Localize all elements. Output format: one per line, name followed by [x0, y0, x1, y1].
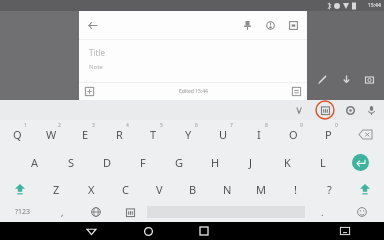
button[interactable]: , [45, 202, 79, 222]
button[interactable]: Back [86, 19, 99, 32]
staticText: ? [327, 182, 332, 197]
staticText: 8 [265, 122, 268, 129]
button[interactable]: More options [292, 87, 301, 96]
button[interactable]: B [176, 176, 210, 202]
staticText: B [189, 182, 197, 197]
staticText: H [211, 155, 220, 170]
button[interactable]: Voice input [365, 104, 378, 117]
button[interactable]: Colour [264, 19, 277, 32]
button[interactable]: Voice [338, 71, 354, 87]
button[interactable]: Add [85, 87, 94, 96]
staticText: P [325, 127, 332, 142]
staticText: Note [89, 63, 103, 71]
button[interactable]: Settings [344, 104, 357, 117]
button[interactable]: Title [79, 40, 307, 82]
staticText: V [156, 182, 163, 197]
button[interactable]: I [241, 120, 276, 148]
staticText: O [289, 127, 298, 142]
button[interactable]: N [210, 176, 244, 202]
button[interactable]: Pin [241, 19, 254, 32]
button[interactable]: ! [278, 176, 312, 202]
button[interactable]: ?123 [0, 202, 45, 222]
button[interactable]: Clipboard [113, 202, 147, 222]
button[interactable]: Emoji [339, 202, 384, 222]
staticText: M [256, 182, 266, 197]
staticText: Z [53, 182, 60, 197]
staticText: 5 [160, 122, 163, 129]
button[interactable]: Hide keyboard [317, 222, 373, 240]
button[interactable]: Back [63, 222, 120, 240]
staticText: Y [185, 127, 192, 142]
staticText: D [103, 155, 112, 170]
staticText: K [284, 155, 291, 170]
button[interactable]: K [269, 148, 305, 176]
staticText: , [61, 206, 64, 218]
staticText: . [321, 206, 324, 218]
button[interactable]: Home [120, 222, 176, 240]
button[interactable]: A [17, 148, 53, 176]
button[interactable]: R [102, 120, 136, 148]
staticText: A [31, 155, 39, 170]
button[interactable]: W [34, 120, 68, 148]
staticText: 2 [58, 122, 61, 129]
button[interactable]: G [161, 148, 197, 176]
button[interactable]: T [136, 120, 171, 148]
button[interactable]: Recents [176, 222, 232, 240]
button[interactable]: M [244, 176, 278, 202]
staticText: F [140, 155, 146, 170]
button[interactable]: Archive [287, 19, 300, 32]
staticText: W [46, 127, 57, 142]
button[interactable]: H [197, 148, 233, 176]
staticText: T [150, 127, 157, 142]
staticText: I [257, 127, 261, 142]
button[interactable]: Clipboard [319, 104, 332, 117]
staticText: R [116, 127, 123, 142]
button[interactable]: Text edit [293, 104, 306, 117]
staticText: 6 [195, 122, 198, 129]
staticText: ! [294, 182, 297, 197]
button[interactable]: Shift [0, 176, 39, 202]
staticText: 15:44 [368, 2, 381, 9]
button[interactable]: Draw [314, 71, 330, 87]
button[interactable]: Q [0, 120, 34, 148]
staticText: 3 [92, 122, 95, 129]
staticText: Title [89, 47, 105, 58]
button[interactable]: C [108, 176, 142, 202]
button[interactable]: Z [39, 176, 74, 202]
button[interactable]: Shift [346, 176, 384, 202]
staticText: ?123 [15, 207, 31, 217]
button[interactable]: D [89, 148, 125, 176]
button[interactable]: X [74, 176, 108, 202]
button[interactable]: F [125, 148, 161, 176]
staticText: 9 [300, 122, 303, 129]
button[interactable]: Y [171, 120, 206, 148]
button[interactable]: ? [312, 176, 346, 202]
button[interactable]: Camera [361, 71, 377, 87]
staticText: N [223, 182, 232, 197]
staticText: Q [13, 127, 22, 142]
button[interactable]: L [305, 148, 341, 176]
staticText: C [122, 182, 129, 197]
staticText: Edited 15:44 [179, 88, 208, 95]
button[interactable]: E [68, 120, 102, 148]
staticText: S [68, 155, 75, 170]
staticText: E [82, 127, 89, 142]
staticText: 0 [335, 122, 338, 129]
button[interactable]: Change language [79, 202, 113, 222]
button[interactable]: S [53, 148, 89, 176]
button[interactable]: P [311, 120, 346, 148]
button[interactable]: . [305, 202, 339, 222]
staticText: J [249, 155, 253, 170]
staticText: 1 [24, 122, 27, 129]
staticText: G [175, 155, 184, 170]
button[interactable]: V [142, 176, 176, 202]
staticText: 7 [230, 122, 233, 129]
staticText: X [88, 182, 95, 197]
button[interactable]: J [233, 148, 269, 176]
button[interactable]: Enter [341, 148, 380, 176]
button[interactable]: O [276, 120, 311, 148]
staticText: U [219, 127, 228, 142]
button[interactable]: Backspace [346, 120, 384, 148]
button[interactable]: U [206, 120, 241, 148]
